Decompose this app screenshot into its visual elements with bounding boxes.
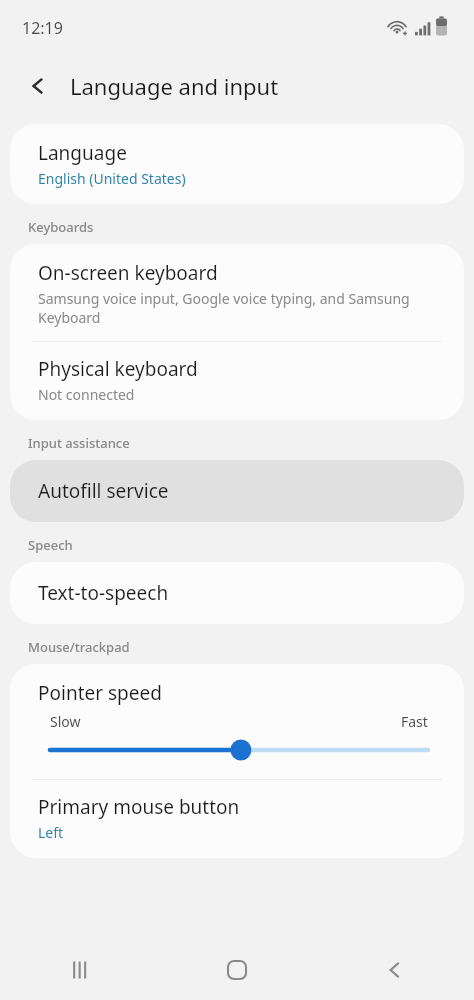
button[interactable]: Primary mouse button [10,780,464,858]
button[interactable]: Pointer speed [10,664,464,779]
staticText: Language [38,140,127,166]
staticText: Input assistance [28,434,130,452]
staticText: Primary mouse button [38,794,240,820]
button[interactable] [38,739,440,761]
staticText: Fast [401,712,428,731]
staticText: Left [38,823,64,842]
staticText: Language and input [70,71,279,101]
staticText: Samsung voice input, Google voice typing… [38,289,440,327]
staticText: Text-to-speech [38,580,169,606]
staticText: On-screen keyboard [38,260,218,286]
button[interactable]: Recents [0,940,158,1000]
button[interactable]: Language [10,124,464,204]
button[interactable]: Autofill service [10,460,464,522]
staticText: Pointer speed [38,680,162,706]
staticText: Speech [28,536,73,554]
button[interactable]: Home [158,940,316,1000]
staticText: Not connected [38,385,135,404]
staticText: Physical keyboard [38,356,198,382]
button[interactable]: On-screen keyboard [10,244,464,341]
button[interactable]: Navigate up [14,62,62,110]
button[interactable]: Physical keyboard [10,342,464,420]
staticText: Mouse/trackpad [28,638,130,656]
staticText: 12:19 [22,17,63,39]
button[interactable]: Back [316,940,474,1000]
staticText: Autofill service [38,478,169,504]
staticText: Slow [50,712,81,731]
button[interactable]: Text-to-speech [10,562,464,624]
staticText: Keyboards [28,218,94,236]
staticText: English (United States) [38,169,186,188]
